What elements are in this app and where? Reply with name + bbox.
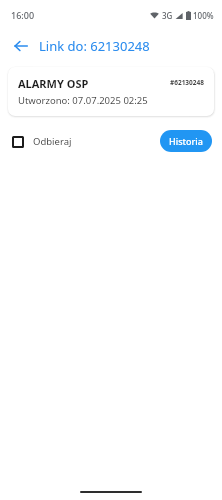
staticText: Odbieraj bbox=[33, 135, 72, 148]
staticText: Link do: 62130248 bbox=[39, 37, 150, 55]
button[interactable]: Historia bbox=[160, 130, 212, 152]
staticText: ALARMY OSP bbox=[18, 76, 89, 91]
button[interactable]: ALARMY OSP bbox=[8, 67, 214, 116]
staticText: #62130248 bbox=[170, 78, 204, 87]
staticText: Utworzono: 07.07.2025 02:25 bbox=[18, 94, 148, 107]
staticText: 100% bbox=[193, 10, 214, 21]
staticText: 3G bbox=[162, 10, 173, 21]
staticText: Historia bbox=[169, 135, 203, 147]
button[interactable]: Back bbox=[7, 32, 35, 60]
staticText: 16:00 bbox=[11, 9, 35, 21]
button[interactable]: Odbieraj bbox=[10, 132, 74, 151]
